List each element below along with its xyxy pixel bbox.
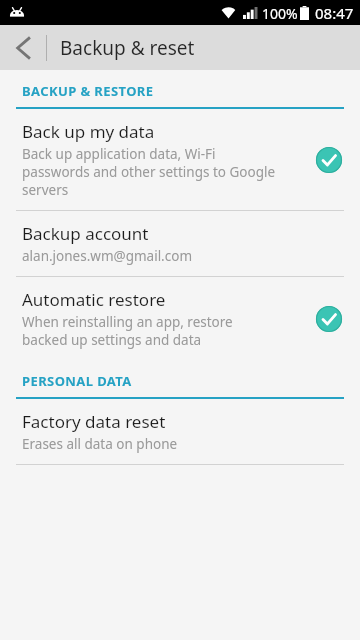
staticText: alan.jones.wm@gmail.com: [22, 247, 193, 265]
staticText: 08:47: [315, 3, 354, 23]
staticText: Back up application data, Wi-Fi password…: [22, 145, 276, 199]
staticText: Erases all data on phone: [22, 435, 178, 453]
staticText: Automatic restore: [22, 288, 166, 311]
button[interactable]: Factory data reset: [0, 399, 360, 464]
staticText: Back up my data: [22, 120, 155, 143]
staticText: PERSONAL DATA: [22, 372, 132, 390]
button[interactable]: Toggle Automatic restore: [314, 304, 344, 334]
button[interactable]: Back: [0, 25, 46, 70]
button[interactable]: Toggle Back up my data: [314, 145, 344, 175]
button[interactable]: Back up my data: [0, 109, 360, 210]
staticText: Backup & reset: [60, 35, 195, 61]
staticText: 100%: [262, 4, 298, 23]
staticText: When reinstalling an app, restore backed…: [22, 313, 233, 349]
staticText: Factory data reset: [22, 410, 166, 433]
staticText: BACKUP & RESTORE: [22, 82, 154, 100]
staticText: Backup account: [22, 222, 149, 245]
button[interactable]: Automatic restore: [0, 277, 360, 360]
button[interactable]: Backup account: [0, 211, 360, 276]
